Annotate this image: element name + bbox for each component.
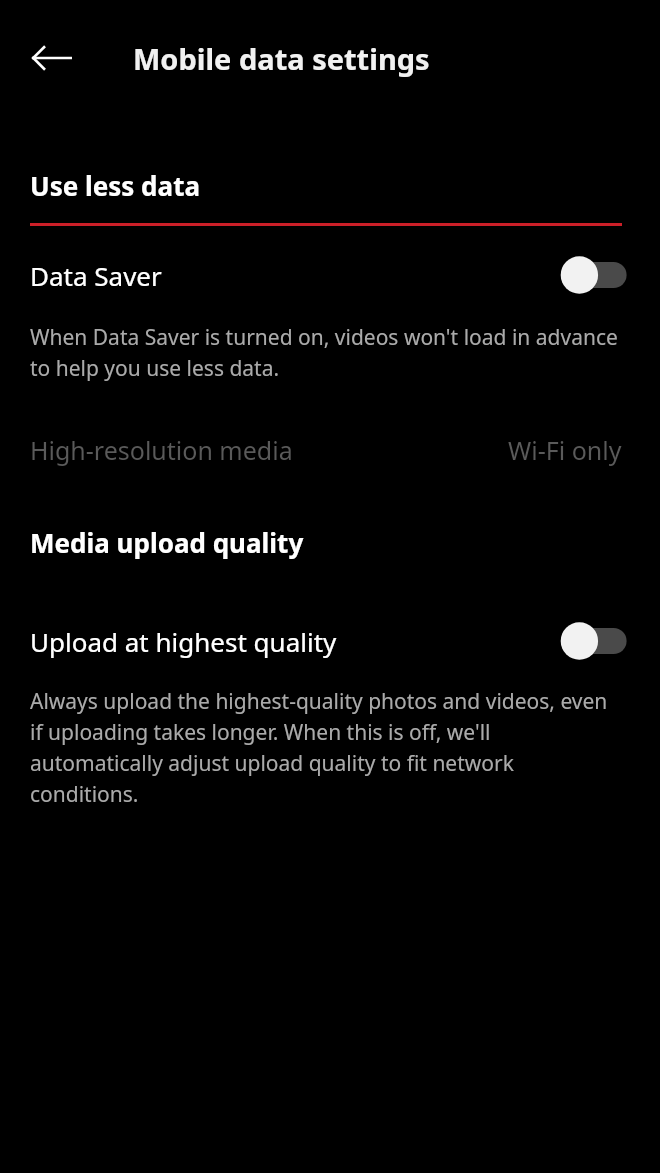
staticText: Mobile data settings [133, 39, 430, 78]
staticText: Use less data [30, 168, 200, 203]
staticText: Wi-Fi only [508, 433, 622, 467]
button[interactable]: Upload at highest quality toggle, off [558, 620, 628, 662]
staticText: Upload at highest quality [30, 624, 558, 659]
button[interactable]: Data Saver toggle, off [558, 254, 628, 296]
button[interactable]: Back [14, 20, 90, 96]
staticText: High-resolution media [30, 433, 508, 467]
staticText: Media upload quality [30, 525, 304, 560]
button[interactable]: High-resolution media [0, 422, 660, 478]
staticText: Data Saver [30, 258, 558, 293]
staticText: Always upload the highest-quality photos… [30, 687, 624, 808]
staticText: When Data Saver is turned on, videos won… [30, 323, 620, 382]
button[interactable]: Data Saver [0, 244, 660, 306]
button[interactable]: Upload at highest quality [0, 612, 660, 670]
